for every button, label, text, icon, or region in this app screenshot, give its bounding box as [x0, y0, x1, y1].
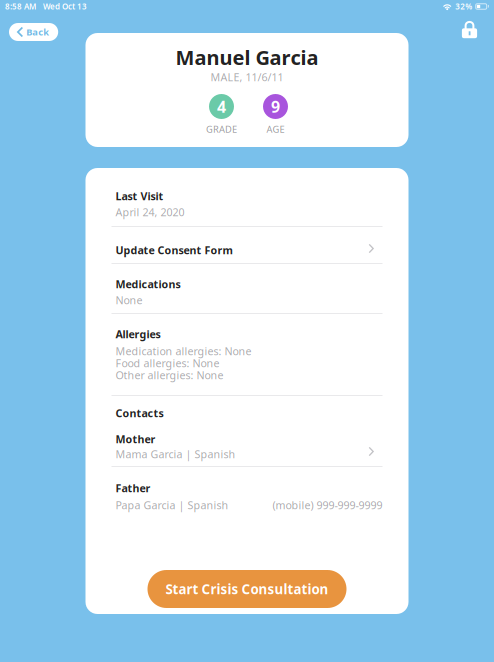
staticText: AGE	[266, 123, 284, 135]
staticText: MALE, 11/6/11	[210, 70, 283, 84]
button[interactable]: Back	[9, 23, 58, 41]
staticText: Medications	[115, 277, 180, 291]
button[interactable]: Lock session	[457, 16, 482, 43]
staticText: Update Consent Form	[115, 243, 232, 257]
staticText: Last Visit	[115, 189, 163, 203]
button[interactable]: Update Consent Form	[85, 227, 408, 263]
staticText: Other allergies: None	[115, 368, 223, 382]
staticText: 4	[217, 96, 226, 117]
staticText: Medication allergies: None	[115, 344, 251, 358]
staticText: (mobile) 999-999-9999	[272, 498, 382, 512]
staticText: Papa Garcia | Spanish	[115, 498, 228, 512]
button[interactable]: Start Crisis Consultation	[147, 570, 346, 608]
staticText: Father	[115, 481, 150, 495]
staticText: None	[115, 293, 142, 307]
staticText: Contacts	[115, 406, 163, 420]
staticText: GRADE	[206, 123, 237, 135]
staticText: April 24, 2020	[115, 205, 184, 219]
staticText: Allergies	[115, 327, 160, 341]
staticText: 9	[271, 96, 280, 117]
staticText: 8:58 AM	[5, 1, 36, 12]
staticText: Start Crisis Consultation	[165, 580, 328, 598]
staticText: 32%	[455, 1, 472, 12]
staticText: Wed Oct 13	[43, 1, 87, 12]
staticText: Mother	[115, 432, 155, 446]
button[interactable]: Mother	[85, 432, 408, 466]
staticText: Back	[26, 26, 49, 38]
staticText: Food allergies: None	[115, 356, 219, 370]
staticText: Manuel Garcia	[175, 44, 318, 71]
staticText: Mama Garcia | Spanish	[115, 447, 235, 461]
